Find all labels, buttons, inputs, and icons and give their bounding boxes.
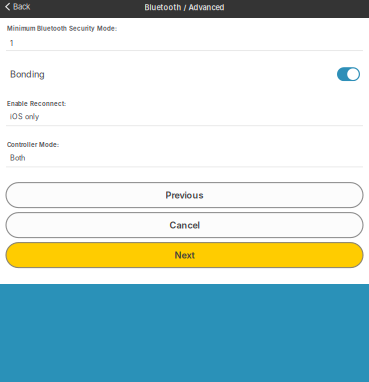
button[interactable]: Back [0, 0, 34, 17]
button[interactable]: Cancel [6, 213, 363, 238]
button[interactable]: Controller Mode: [0, 126, 369, 168]
staticText: Back [13, 2, 30, 11]
staticText: Controller Mode: [7, 141, 59, 148]
button[interactable]: Minimum Bluetooth Security Mode: [0, 18, 369, 51]
staticText: Next [174, 250, 194, 261]
staticText: Bonding [10, 69, 45, 80]
staticText: Both [10, 153, 25, 162]
staticText: Enable Reconnect: [7, 100, 66, 107]
staticText: 1 [10, 39, 13, 48]
staticText: iOS only [10, 112, 39, 121]
staticText: Bluetooth / Advanced [144, 3, 224, 12]
button[interactable]: Bonding, on [337, 67, 360, 81]
staticText: Previous [165, 190, 203, 201]
button[interactable]: Previous [6, 183, 363, 208]
button[interactable]: Enable Reconnect: [0, 81, 369, 126]
staticText: Cancel [169, 220, 199, 231]
staticText: Minimum Bluetooth Security Mode: [7, 25, 117, 32]
button[interactable]: Next [6, 243, 363, 268]
